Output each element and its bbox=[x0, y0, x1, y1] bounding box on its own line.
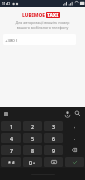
button[interactable]: 0 bbox=[23, 157, 42, 167]
staticText: Для авторизації вкажіть номер bbox=[0, 20, 85, 25]
staticText: 2 bbox=[31, 123, 34, 130]
button[interactable]: Clipboard bbox=[4, 112, 8, 116]
staticText: # bbox=[12, 160, 15, 165]
button[interactable]: Comma bbox=[65, 121, 84, 131]
button[interactable]: * bbox=[1, 157, 21, 167]
staticText: , bbox=[74, 123, 76, 130]
button[interactable]: 3 bbox=[44, 121, 63, 131]
staticText: LUBIMOE bbox=[22, 12, 45, 19]
staticText: 8 bbox=[31, 147, 34, 154]
staticText: 3 bbox=[52, 123, 55, 130]
staticText: +380 ( bbox=[5, 37, 18, 43]
button[interactable]: Enter bbox=[65, 157, 84, 167]
button[interactable]: 5 bbox=[23, 133, 42, 143]
button[interactable]: 8 bbox=[23, 145, 42, 155]
button[interactable]: 9 bbox=[44, 145, 63, 155]
staticText: TAXI bbox=[47, 12, 59, 18]
staticText: 9 bbox=[52, 147, 55, 154]
button[interactable]: 2 bbox=[23, 121, 42, 131]
staticText: . bbox=[74, 135, 76, 142]
staticText: 4 bbox=[10, 135, 13, 142]
staticText: 1 bbox=[10, 123, 13, 130]
staticText: 6 bbox=[52, 135, 55, 142]
staticText: + bbox=[33, 160, 36, 165]
staticText: * bbox=[8, 159, 11, 166]
button[interactable]: +380 ( bbox=[3, 34, 76, 45]
button[interactable]: Voice input bbox=[64, 110, 71, 117]
button[interactable]: Backspace bbox=[65, 145, 84, 155]
button[interactable]: 7 bbox=[1, 145, 21, 155]
button[interactable]: 4 bbox=[1, 133, 21, 143]
staticText: 5 bbox=[31, 135, 34, 142]
button[interactable]: 1 bbox=[1, 121, 21, 131]
staticText: 0 bbox=[29, 159, 32, 166]
button[interactable]: 6 bbox=[44, 133, 63, 143]
button[interactable] bbox=[44, 157, 63, 167]
staticText: вашого мобільного телефону bbox=[0, 25, 85, 30]
button[interactable]: Search bbox=[74, 110, 81, 117]
button[interactable]: Dot bbox=[65, 133, 84, 143]
staticText: 7 bbox=[10, 147, 13, 154]
staticText: 11:41 bbox=[2, 2, 11, 6]
